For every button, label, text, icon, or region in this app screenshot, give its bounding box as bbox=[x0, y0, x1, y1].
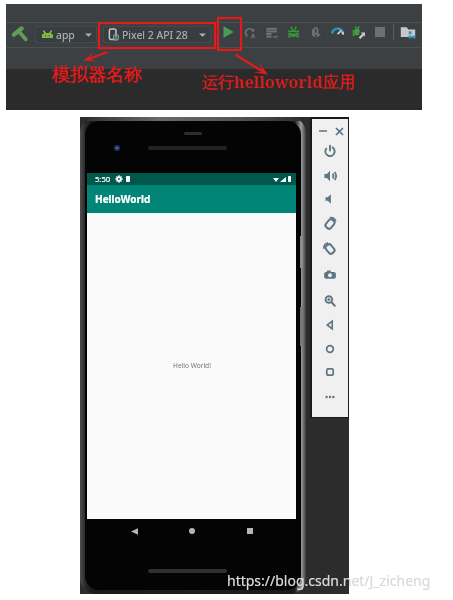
button[interactable]: Apply changes bbox=[242, 24, 258, 40]
staticText: 应用 bbox=[323, 73, 355, 93]
button[interactable]: Build bbox=[10, 22, 28, 40]
button[interactable]: Close bbox=[333, 125, 345, 137]
button[interactable]: Debug attach bbox=[350, 24, 366, 40]
button[interactable]: Back bbox=[124, 521, 144, 541]
button[interactable]: Attach debugger bbox=[307, 24, 323, 40]
button[interactable]: Overview bbox=[321, 363, 339, 381]
button[interactable]: Home bbox=[321, 340, 339, 358]
staticText: helloworld bbox=[234, 71, 323, 93]
button[interactable]: Volume up bbox=[321, 167, 339, 185]
button[interactable]: app bbox=[35, 26, 97, 43]
staticText: 模拟器名称 bbox=[52, 64, 142, 87]
staticText: Pixel 2 API 28 bbox=[122, 28, 188, 42]
staticText: app bbox=[56, 28, 75, 42]
button[interactable]: Rotate right bbox=[321, 240, 339, 258]
button[interactable]: Power bbox=[321, 142, 339, 160]
button[interactable]: Home bbox=[182, 521, 202, 541]
button[interactable]: Minimize bbox=[317, 125, 329, 137]
button[interactable]: Logcat bbox=[263, 24, 279, 40]
button[interactable]: Pixel 2 API 28 bbox=[103, 26, 211, 43]
staticText: 运行 bbox=[202, 73, 234, 93]
button[interactable]: Rotate left bbox=[321, 215, 339, 233]
button[interactable]: Take screenshot bbox=[321, 266, 339, 284]
button[interactable]: Run app bbox=[221, 25, 235, 39]
button[interactable]: More bbox=[321, 388, 339, 406]
button[interactable]: Recents bbox=[240, 521, 260, 541]
button[interactable]: Profiler bbox=[329, 24, 345, 40]
button[interactable]: Volume down bbox=[321, 190, 339, 208]
staticText: 5:50 bbox=[95, 174, 111, 184]
button[interactable]: Debug bbox=[285, 24, 301, 40]
button[interactable]: Back bbox=[321, 316, 339, 334]
button[interactable]: Device manager bbox=[400, 24, 416, 40]
staticText: https://blog.csdn.net/J_zicheng bbox=[227, 571, 431, 590]
staticText: HelloWorld bbox=[95, 192, 151, 206]
button[interactable]: Zoom bbox=[321, 292, 339, 310]
staticText: Hello World! bbox=[173, 361, 211, 370]
